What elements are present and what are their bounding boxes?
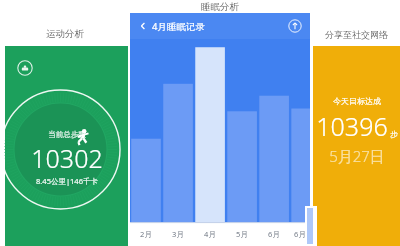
button[interactable]: Share — [288, 19, 302, 33]
button[interactable]: 今天目标达成 — [313, 46, 400, 246]
staticText: 分享至社交网络 — [325, 29, 388, 40]
staticText: 睡眠分析 — [201, 1, 239, 13]
staticText: 当前总步数 — [48, 130, 86, 139]
button[interactable]: Back — [136, 19, 150, 33]
staticText: 6月 — [294, 229, 306, 239]
staticText: 4月睡眠记录 — [152, 20, 205, 33]
staticText: 6月 — [268, 229, 280, 239]
staticText: 步 — [390, 129, 398, 139]
staticText: 5月27日 — [329, 146, 385, 166]
staticText: 3月 — [172, 229, 184, 239]
staticText: 10396 — [316, 109, 388, 143]
staticText: 5月 — [236, 229, 248, 239]
staticText: 运动分析 — [46, 28, 84, 40]
button[interactable]: Activity badge — [17, 60, 33, 76]
staticText: 10302 — [31, 141, 103, 175]
staticText: 今天目标达成 — [333, 96, 381, 106]
button[interactable]: 4月睡眠记录 — [152, 20, 205, 33]
staticText: 2月 — [140, 229, 152, 239]
staticText: 4月 — [204, 229, 216, 239]
button[interactable]: Activity badge — [5, 46, 128, 246]
staticText: 8.45公里|146千卡 — [36, 176, 98, 186]
